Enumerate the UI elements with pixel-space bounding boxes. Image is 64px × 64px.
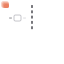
button[interactable]: Profile [1, 1, 9, 8]
